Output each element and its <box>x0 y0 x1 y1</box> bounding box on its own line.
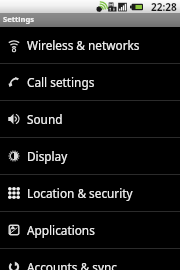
staticText: Call settings <box>27 74 95 90</box>
staticText: Display <box>27 148 68 164</box>
staticText: Settings <box>3 14 35 24</box>
staticText: Location & security <box>27 185 133 201</box>
staticText: Wireless & networks <box>27 37 140 53</box>
button[interactable]: Call settings <box>0 64 180 100</box>
staticText: Applications <box>27 222 95 238</box>
button[interactable]: Display <box>0 138 180 174</box>
staticText: Sound <box>27 111 63 127</box>
staticText: 22:28 <box>151 0 177 13</box>
button[interactable]: Location & security <box>0 175 180 211</box>
button[interactable]: Applications <box>0 212 180 248</box>
button[interactable]: Accounts & sync <box>0 249 180 270</box>
button[interactable]: Sound <box>0 101 180 137</box>
staticText: Accounts & sync <box>27 259 117 270</box>
button[interactable]: Wireless & networks <box>0 27 180 63</box>
